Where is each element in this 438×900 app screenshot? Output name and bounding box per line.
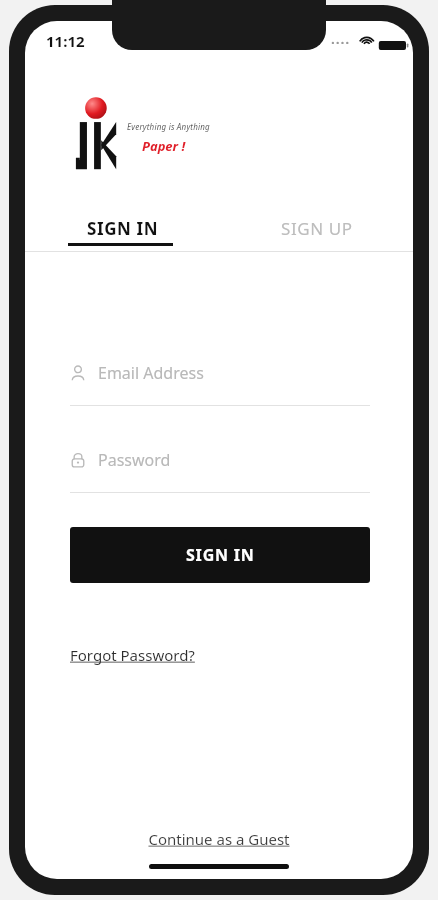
button[interactable]: Email Address <box>70 354 370 406</box>
staticText: Everything is Anything <box>127 121 210 132</box>
button[interactable]: Continue as a Guest <box>148 829 290 849</box>
staticText: SIGN IN <box>87 217 159 240</box>
button[interactable]: SIGN IN <box>43 206 203 251</box>
staticText: SIGN UP <box>281 217 353 240</box>
staticText: Password <box>98 449 171 471</box>
button[interactable]: SIGN IN <box>70 527 370 583</box>
staticText: 11:12 <box>46 31 85 51</box>
button[interactable]: SIGN UP <box>237 206 397 251</box>
staticText: SIGN IN <box>186 544 255 566</box>
staticText: Email Address <box>98 362 204 384</box>
button[interactable]: Password <box>70 441 370 493</box>
staticText: Forgot Password? <box>70 645 195 665</box>
staticText: Paper ! <box>142 137 186 155</box>
button[interactable]: Forgot Password? <box>70 645 195 665</box>
staticText: Continue as a Guest <box>148 829 290 849</box>
